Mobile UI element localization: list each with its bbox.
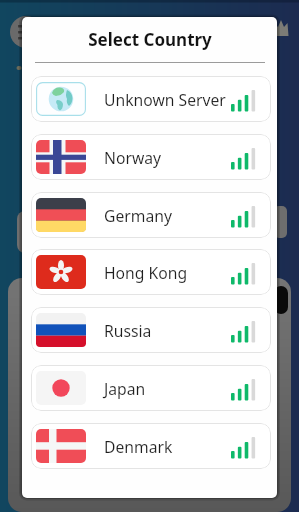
staticText: Select Country	[88, 28, 212, 51]
staticText: Japan	[104, 378, 146, 399]
staticText: Unknown Server	[104, 89, 226, 110]
button[interactable]: Germany	[31, 192, 271, 238]
staticText: Norway	[104, 147, 162, 168]
button[interactable]: Russia	[31, 307, 271, 353]
button[interactable]: Hong Kong	[31, 249, 271, 295]
staticText: Germany	[104, 205, 172, 226]
button[interactable]: Norway	[31, 134, 271, 180]
staticText: Hong Kong	[104, 262, 188, 283]
staticText: Russia	[104, 320, 152, 341]
button[interactable]: Denmark	[31, 423, 271, 469]
button[interactable]: Unknown Server	[31, 76, 271, 122]
button[interactable]: Japan	[31, 365, 271, 411]
staticText: Denmark	[104, 436, 173, 457]
